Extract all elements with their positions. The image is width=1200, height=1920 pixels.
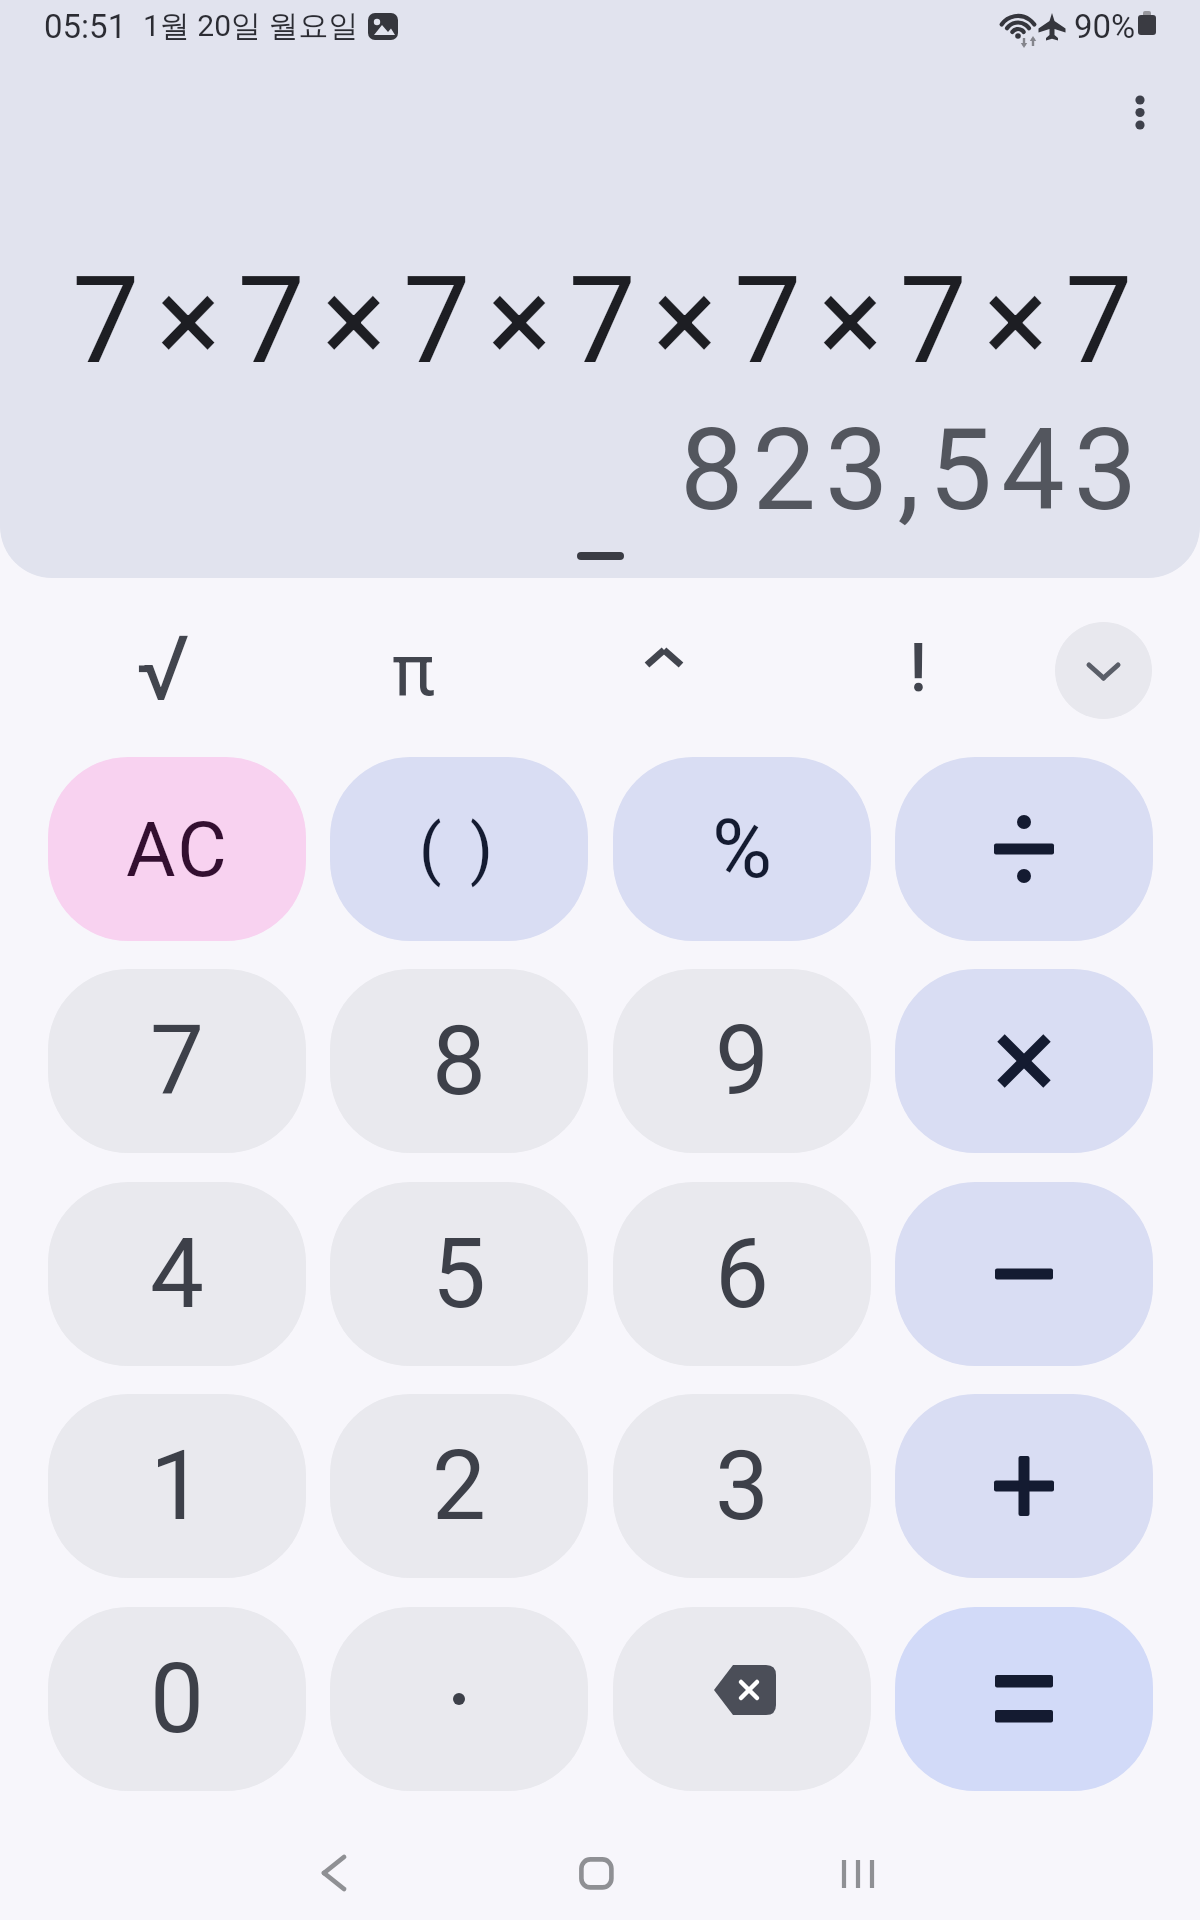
staticText: 0	[150, 1643, 204, 1756]
staticText: 5	[432, 1218, 486, 1331]
staticText: 9	[715, 1005, 769, 1118]
staticText: 1월 20일 월요일	[143, 7, 359, 45]
staticText: !	[910, 631, 927, 706]
staticText: √	[136, 617, 190, 717]
staticText: 8	[432, 1005, 486, 1118]
staticText: 6	[715, 1218, 769, 1331]
staticText: 7	[150, 1005, 204, 1118]
staticText: 3	[715, 1430, 769, 1543]
staticText: 05:51	[44, 7, 127, 46]
staticText: 1	[150, 1430, 204, 1543]
staticText: 90%	[1074, 7, 1136, 46]
staticText: %	[712, 801, 773, 897]
staticText: π	[392, 628, 435, 712]
staticText: AC	[126, 805, 229, 894]
staticText: 2	[432, 1430, 486, 1543]
staticText: 823,543	[680, 404, 1147, 536]
staticText: ( )	[419, 811, 499, 888]
staticText: 7×7×7×7×7×7×7	[72, 251, 1150, 391]
staticText: 4	[150, 1218, 204, 1331]
